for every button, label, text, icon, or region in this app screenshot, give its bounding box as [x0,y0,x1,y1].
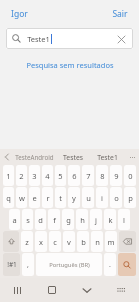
staticText: k [108,215,113,225]
staticText: m [107,237,115,247]
button[interactable]: a [9,209,20,230]
staticText: Teste1 [27,34,50,44]
staticText: y [72,193,76,203]
staticText: Igor [11,8,28,20]
staticText: u [86,193,91,203]
staticText: . [109,260,111,270]
staticText: d [38,215,43,225]
button[interactable]: Shift [3,231,19,252]
button[interactable]: l [118,209,130,230]
button[interactable]: s [22,209,33,230]
button[interactable]: p [124,187,136,208]
button[interactable]: 9 [110,165,122,186]
staticText: j [95,215,97,225]
button[interactable]: h [76,209,88,230]
button[interactable]: 3 [29,165,40,186]
button[interactable]: Testes [55,149,90,165]
staticText: c [53,237,57,247]
button[interactable]: , [22,253,34,276]
button[interactable]: 2 [16,165,27,186]
staticText: Português (BR) [49,261,90,269]
button[interactable]: w [16,187,27,208]
staticText: s [26,215,30,225]
button[interactable]: 4 [42,165,53,186]
button[interactable]: c [49,231,61,252]
button[interactable]: 6 [68,165,80,186]
button[interactable]: n [91,231,103,252]
button[interactable]: d [35,209,46,230]
staticText: Sair [112,8,128,20]
button[interactable]: b [77,231,89,252]
staticText: 4 [45,171,50,181]
staticText: 3 [32,171,37,181]
button[interactable]: 1 [3,165,14,186]
button[interactable]: f [48,209,60,230]
staticText: g [66,215,71,225]
staticText: , [27,260,29,270]
staticText: l [123,215,125,225]
button[interactable]: 7 [82,165,94,186]
button[interactable]: Igor [8,6,31,22]
button[interactable]: !#1 [3,253,20,276]
button[interactable]: v [63,231,75,252]
button[interactable]: More options [125,149,139,165]
button[interactable]: o [110,187,122,208]
staticText: 2 [19,171,24,181]
button[interactable]: TesteAndroid [14,149,55,165]
staticText: Teste1 [97,153,118,162]
staticText: h [80,215,85,225]
button[interactable]: Sair [109,6,131,22]
staticText: p [128,193,133,203]
button[interactable]: t [55,187,66,208]
staticText: i [101,193,103,203]
staticText: n [95,237,100,247]
staticText: 0 [128,171,133,181]
staticText: 5 [58,171,63,181]
button[interactable]: Previous suggestions [0,149,14,165]
button[interactable]: z [21,231,33,252]
staticText: 9 [114,171,119,181]
other: Search [12,34,21,43]
staticText: q [6,193,11,203]
button[interactable]: 0 [124,165,136,186]
button[interactable]: Home [34,278,69,302]
button[interactable]: Backspace [119,231,136,252]
staticText: f [53,215,56,225]
button[interactable]: e [29,187,40,208]
button[interactable]: Clear search [115,33,127,45]
staticText: Testes [63,153,83,162]
button[interactable]: u [82,187,94,208]
button[interactable]: y [68,187,80,208]
button[interactable]: Hide keyboard [69,278,104,302]
staticText: e [32,193,37,203]
button[interactable]: Recents [0,278,34,302]
staticText: !#1 [7,260,17,269]
staticText: t [59,193,62,203]
button[interactable]: Space [36,253,102,276]
button[interactable]: 8 [96,165,108,186]
staticText: 7 [86,171,91,181]
staticText: b [81,237,86,247]
staticText: 6 [72,171,77,181]
button[interactable]: x [35,231,47,252]
button[interactable]: . [104,253,116,276]
button[interactable]: q [3,187,14,208]
staticText: Pesquisa sem resultados [26,60,114,70]
button[interactable]: Change keyboard [104,278,139,302]
staticText: v [67,237,71,247]
staticText: 1 [6,171,11,181]
button[interactable]: m [105,231,117,252]
staticText: x [39,237,43,247]
button[interactable]: i [96,187,108,208]
staticText: r [46,193,50,203]
button[interactable]: Search [6,28,133,49]
staticText: 8 [100,171,105,181]
button[interactable]: j [90,209,102,230]
button[interactable]: g [62,209,74,230]
button[interactable]: r [42,187,53,208]
button[interactable]: Teste1 [90,149,125,165]
button[interactable]: k [104,209,116,230]
button[interactable]: Search [118,253,136,276]
button[interactable]: 5 [55,165,66,186]
staticText: TesteAndroid [15,153,54,161]
